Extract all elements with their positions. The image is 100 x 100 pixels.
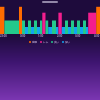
staticText: 深い	[65, 40, 71, 43]
staticText: 2:00	[57, 34, 63, 38]
staticText: 覚醒	[32, 40, 38, 43]
staticText: レム	[43, 40, 49, 43]
staticText: 23:00	[0, 34, 7, 38]
staticText: 4:00	[94, 34, 100, 38]
staticText: 3:00	[75, 34, 81, 38]
staticText: 1:00	[38, 34, 44, 38]
staticText: 0:00	[20, 34, 26, 38]
staticText: 浅い	[54, 40, 60, 43]
